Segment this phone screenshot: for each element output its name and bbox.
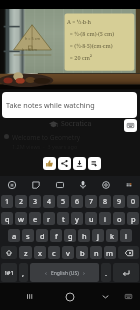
button[interactable]: Download xyxy=(73,157,86,170)
button[interactable]: Voice input xyxy=(71,176,94,193)
staticText: i xyxy=(104,214,106,224)
button[interactable]: n xyxy=(90,246,102,259)
button[interactable]: a xyxy=(8,229,20,242)
staticText: 6 xyxy=(75,197,80,207)
staticText: j xyxy=(97,231,99,241)
staticText: 2 xyxy=(19,197,24,207)
staticText: ‹ xyxy=(45,269,47,277)
staticText: n xyxy=(94,248,99,258)
button[interactable]: Search xyxy=(0,176,24,193)
staticText: m xyxy=(106,248,114,258)
staticText: d xyxy=(40,231,45,241)
button[interactable]: o xyxy=(113,212,125,225)
button[interactable]: More xyxy=(117,176,140,193)
staticText: 3 xyxy=(33,197,38,207)
staticText: b = 8 cm xyxy=(22,47,38,52)
button[interactable]: key xyxy=(1,246,17,259)
button[interactable]: 4 xyxy=(43,195,55,208)
staticText: f xyxy=(55,231,58,241)
staticText: w xyxy=(18,214,24,224)
staticText: English (US) xyxy=(51,270,79,277)
button[interactable]: s xyxy=(22,229,34,242)
button[interactable]: Share xyxy=(58,157,71,170)
staticText: = 20 cm² xyxy=(67,54,93,61)
button[interactable]: , xyxy=(19,263,28,282)
staticText: q xyxy=(5,214,10,224)
staticText: !#1 xyxy=(5,269,14,277)
button[interactable]: key xyxy=(113,263,139,282)
button[interactable]: d xyxy=(36,229,48,242)
staticText: 1 xyxy=(5,197,10,207)
button[interactable]: 1 xyxy=(1,195,13,208)
button[interactable]: j xyxy=(92,229,104,242)
staticText: A = ½·b·h xyxy=(67,18,92,25)
staticText: t xyxy=(62,214,65,224)
button[interactable]: l xyxy=(120,229,132,242)
button[interactable]: Settings xyxy=(94,176,117,193)
staticText: 5 xyxy=(61,197,66,207)
button[interactable]: key xyxy=(30,263,99,282)
button[interactable]: key xyxy=(118,246,139,259)
button[interactable]: h xyxy=(78,229,90,242)
button[interactable]: Save xyxy=(88,157,101,170)
button[interactable]: 8 xyxy=(99,195,111,208)
button[interactable]: 7 xyxy=(85,195,97,208)
staticText: r xyxy=(47,214,51,224)
staticText: 8 xyxy=(103,197,108,207)
button[interactable]: Socratica xyxy=(49,119,92,129)
button[interactable]: v xyxy=(62,246,74,259)
button[interactable]: 2 xyxy=(15,195,27,208)
staticText: Socratica xyxy=(61,119,92,129)
staticText: a xyxy=(12,231,17,241)
staticText: c xyxy=(52,248,56,258)
button[interactable]: u xyxy=(85,212,97,225)
button[interactable]: Switch keyboard xyxy=(121,283,135,310)
staticText: e xyxy=(33,214,38,224)
button[interactable]: Hide keyboard xyxy=(97,283,113,310)
staticText: k xyxy=(110,231,115,241)
button[interactable]: b xyxy=(76,246,88,259)
staticText: u xyxy=(89,214,94,224)
button[interactable]: x xyxy=(34,246,46,259)
staticText: 9 xyxy=(117,197,122,207)
button[interactable]: g xyxy=(64,229,76,242)
button[interactable]: Home xyxy=(62,283,78,310)
button[interactable]: Like xyxy=(43,157,56,170)
button[interactable]: p xyxy=(127,212,139,225)
button[interactable]: t xyxy=(57,212,69,225)
button[interactable]: . xyxy=(101,263,111,282)
staticText: o xyxy=(117,214,122,224)
button[interactable]: Take notes while watching xyxy=(2,92,137,118)
button[interactable]: i xyxy=(99,212,111,225)
button[interactable]: Recents xyxy=(21,283,37,310)
staticText: l xyxy=(125,231,127,241)
button[interactable]: 5 xyxy=(57,195,69,208)
button[interactable]: Take notes xyxy=(124,119,137,132)
button[interactable]: 3 xyxy=(29,195,41,208)
button[interactable]: e xyxy=(29,212,41,225)
button[interactable]: y xyxy=(71,212,83,225)
button[interactable]: 9 xyxy=(113,195,125,208)
button[interactable]: q xyxy=(1,212,13,225)
button[interactable]: m xyxy=(104,246,116,259)
staticText: z xyxy=(24,248,28,258)
staticText: h xyxy=(82,231,87,241)
staticText: , xyxy=(22,268,25,278)
button[interactable]: z xyxy=(19,246,32,259)
button[interactable]: 6 xyxy=(71,195,83,208)
button[interactable]: !#1 xyxy=(1,263,17,282)
staticText: x xyxy=(38,248,42,258)
button[interactable]: f xyxy=(50,229,62,242)
button[interactable]: c xyxy=(48,246,60,259)
staticText: . xyxy=(105,268,108,278)
button[interactable]: w xyxy=(15,212,27,225)
staticText: 7 xyxy=(89,197,94,207)
staticText: s xyxy=(26,231,30,241)
button[interactable]: Stickers xyxy=(24,176,48,193)
button[interactable]: GIF xyxy=(48,176,71,193)
staticText: 0 xyxy=(131,197,136,207)
button[interactable]: r xyxy=(43,212,55,225)
button[interactable]: 0 xyxy=(127,195,139,208)
staticText: b xyxy=(80,248,85,258)
button[interactable]: k xyxy=(106,229,118,242)
